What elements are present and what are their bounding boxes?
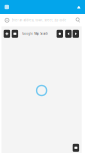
button[interactable]: Map layers — [12, 30, 18, 38]
button[interactable]: Locate me — [57, 30, 63, 38]
staticText: Enter an address, town, street, zip code — [12, 18, 67, 22]
button[interactable]: Menu — [0, 0, 14, 14]
button[interactable]: Account — [73, 0, 85, 14]
button[interactable]: Forward — [73, 30, 79, 38]
button[interactable]: Add place — [4, 30, 10, 38]
button[interactable]: Map tools — [73, 144, 79, 152]
staticText: Google Map Search — [22, 32, 48, 35]
button[interactable]: Enter an address, town, street, zip code — [0, 14, 85, 26]
button[interactable]: Back — [65, 30, 72, 38]
